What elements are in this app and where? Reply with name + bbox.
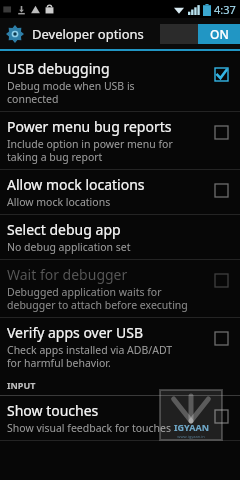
staticText: IGYAAN	[174, 421, 209, 433]
button[interactable]: Verify apps over USB checkbox	[206, 323, 236, 353]
button[interactable]: Show touches checkbox	[206, 401, 236, 431]
button[interactable]: Developer options icon	[4, 23, 26, 45]
button[interactable]: Allow mock locations checkbox	[206, 175, 236, 205]
staticText: Verify apps over USB	[7, 323, 144, 342]
staticText: Debug mode when USB is connected	[7, 79, 135, 106]
button[interactable]: Wait for debugger checkbox	[206, 265, 236, 295]
staticText: INPUT	[7, 379, 36, 391]
staticText: Show touches	[7, 401, 99, 420]
staticText: Include option in power menu for taking …	[7, 137, 173, 164]
staticText: Debugged application waits for debugger …	[7, 285, 188, 312]
staticText: Allow mock locations	[7, 195, 111, 209]
staticText: ON	[210, 26, 229, 42]
staticText: Developer options	[32, 25, 144, 43]
button[interactable]: Allow mock locations	[0, 170, 240, 214]
button[interactable]: Select debug app	[0, 215, 240, 259]
staticText: No debug application set	[7, 240, 131, 254]
button[interactable]: Verify apps over USB	[0, 318, 240, 375]
button[interactable]: Power menu bug reports checkbox	[206, 117, 236, 147]
button[interactable]: Developer options on off switch	[160, 24, 240, 44]
staticText: Power menu bug reports	[7, 117, 172, 136]
button[interactable]: USB debugging	[0, 54, 240, 111]
staticText: www.igyaan.in	[177, 434, 205, 439]
staticText: Show visual feedback for touches	[7, 421, 172, 435]
button[interactable]: Wait for debugger	[0, 260, 240, 317]
button[interactable]: Show touches	[0, 396, 240, 440]
button[interactable]: Power menu bug reports	[0, 112, 240, 169]
staticText: 4:37	[214, 2, 236, 17]
staticText: Wait for debugger	[7, 265, 128, 284]
staticText: Allow mock locations	[7, 175, 145, 194]
staticText: USB debugging	[7, 59, 110, 78]
staticText: Select debug app	[7, 220, 121, 239]
staticText: Check apps installed via ADB/ADT for har…	[7, 343, 173, 370]
button[interactable]: USB debugging checkbox	[206, 59, 236, 89]
